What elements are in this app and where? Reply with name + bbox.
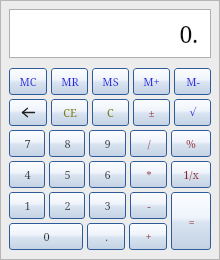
button[interactable]: 8 [49, 130, 85, 157]
button[interactable]: 1/x [171, 161, 211, 188]
staticText: M+ [143, 74, 160, 89]
button[interactable]: + [129, 223, 167, 250]
button[interactable]: . [87, 223, 125, 250]
button[interactable]: 4 [9, 161, 45, 188]
staticText: 1 [24, 198, 31, 213]
button[interactable]: 6 [89, 161, 126, 188]
button[interactable]: 1 [9, 192, 45, 219]
staticText: * [146, 167, 152, 182]
staticText: - [147, 198, 151, 213]
button[interactable]: MS [92, 68, 129, 95]
staticText: MC [19, 74, 37, 89]
staticText: + [145, 229, 152, 244]
staticText: / [147, 136, 151, 151]
staticText: 1/x [183, 167, 199, 182]
staticText: 7 [24, 136, 31, 151]
staticText: M- [186, 74, 200, 89]
button[interactable]: C [92, 99, 129, 126]
button[interactable]: MC [9, 68, 47, 95]
button[interactable]: 9 [89, 130, 126, 157]
button[interactable]: M- [174, 68, 211, 95]
button[interactable]: M+ [133, 68, 170, 95]
button[interactable]: CE [51, 99, 88, 126]
staticText: % [186, 136, 196, 151]
button[interactable]: = [171, 192, 211, 250]
button[interactable]: % [171, 130, 211, 157]
staticText: 0 [43, 229, 50, 244]
staticText: MS [102, 74, 119, 89]
staticText: ± [148, 105, 155, 120]
button[interactable]: ± [133, 99, 170, 126]
staticText: 6 [104, 167, 111, 182]
button[interactable]: - [130, 192, 167, 219]
staticText: 8 [64, 136, 71, 151]
staticText: C [107, 105, 114, 120]
button[interactable]: 2 [49, 192, 85, 219]
staticText: 3 [104, 198, 111, 213]
button[interactable]: MR [51, 68, 88, 95]
staticText: . [105, 229, 108, 244]
staticText: CE [63, 105, 77, 120]
staticText: 9 [104, 136, 111, 151]
staticText: 4 [24, 167, 31, 182]
button[interactable]: 0 [9, 223, 83, 250]
button[interactable]: √ [174, 99, 211, 126]
staticText: 5 [64, 167, 71, 182]
staticText: 0. [179, 18, 198, 49]
button[interactable]: 5 [49, 161, 85, 188]
staticText: MR [61, 74, 79, 89]
staticText: 2 [64, 198, 71, 213]
staticText: = [188, 214, 195, 229]
button[interactable]: * [130, 161, 167, 188]
button[interactable]: 3 [89, 192, 126, 219]
button[interactable]: / [130, 130, 167, 157]
button[interactable]: 7 [9, 130, 45, 157]
button[interactable]: Backspace [9, 99, 47, 126]
staticText: √ [189, 106, 197, 119]
